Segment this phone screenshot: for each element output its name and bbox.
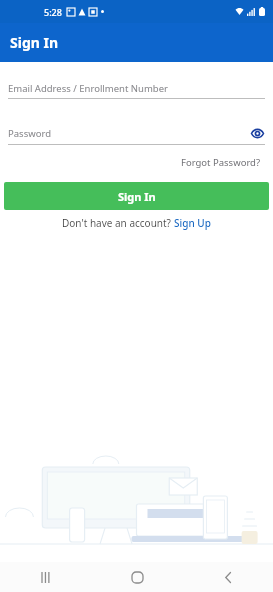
button[interactable]: Forgot Password? — [177, 153, 265, 172]
staticText: Don't have an account? — [62, 216, 174, 230]
staticText: Sign In — [118, 189, 156, 204]
staticText: Password — [8, 127, 249, 140]
staticText: 5:28 — [44, 6, 62, 18]
button[interactable]: Home — [120, 562, 154, 592]
staticText: Sign In — [10, 33, 59, 52]
button[interactable]: Sign In — [4, 182, 269, 210]
staticText: Email Address / Enrollment Number — [8, 82, 265, 95]
button[interactable]: Sign Up — [174, 216, 211, 230]
staticText: Sign Up — [174, 216, 211, 230]
button[interactable]: Show password — [249, 125, 265, 141]
staticText: Forgot Password? — [181, 156, 261, 169]
button[interactable]: Recent apps — [29, 562, 63, 592]
button[interactable]: Back — [211, 562, 245, 592]
